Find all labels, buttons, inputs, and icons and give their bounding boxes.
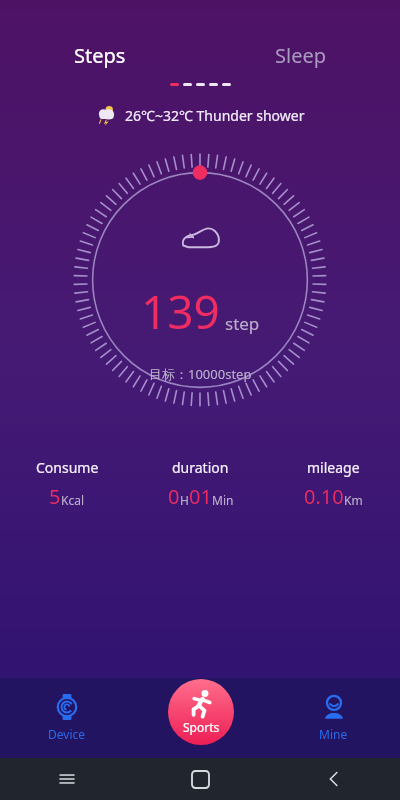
staticText: Consume [36, 458, 99, 477]
staticText: Device [48, 726, 86, 742]
staticText: Kcal [61, 492, 85, 508]
staticText: 目标：10000step [149, 365, 252, 383]
staticText: 5 [49, 483, 61, 510]
staticText: 0.10 [304, 483, 344, 510]
staticText: duration [172, 458, 229, 477]
button[interactable]: Sports [168, 679, 234, 745]
button[interactable]: mileage [267, 458, 400, 510]
button[interactable]: Back [267, 758, 400, 800]
staticText: Km [344, 492, 363, 508]
button[interactable]: duration [134, 458, 267, 510]
button[interactable]: Device [0, 678, 134, 758]
button[interactable]: Home [134, 758, 267, 800]
staticText: mileage [307, 458, 360, 477]
button[interactable]: Mine [267, 678, 400, 758]
staticText: 01 [189, 483, 212, 510]
button[interactable]: Sleep [200, 42, 400, 69]
staticText: Sleep [275, 42, 326, 69]
button[interactable]: 26℃~32℃ Thunder shower [0, 104, 400, 126]
staticText: step [225, 312, 260, 335]
staticText: 139 [141, 280, 220, 343]
button[interactable]: Steps [0, 42, 200, 69]
staticText: 0 [168, 483, 180, 510]
staticText: Sports [183, 719, 220, 735]
button[interactable]: Consume [0, 458, 134, 510]
staticText: Min [212, 492, 234, 508]
staticText: Mine [319, 726, 348, 742]
staticText: H [180, 492, 189, 508]
staticText: 26℃~32℃ Thunder shower [125, 106, 305, 125]
staticText: Steps [74, 42, 126, 69]
button[interactable]: Recent apps [0, 758, 134, 800]
